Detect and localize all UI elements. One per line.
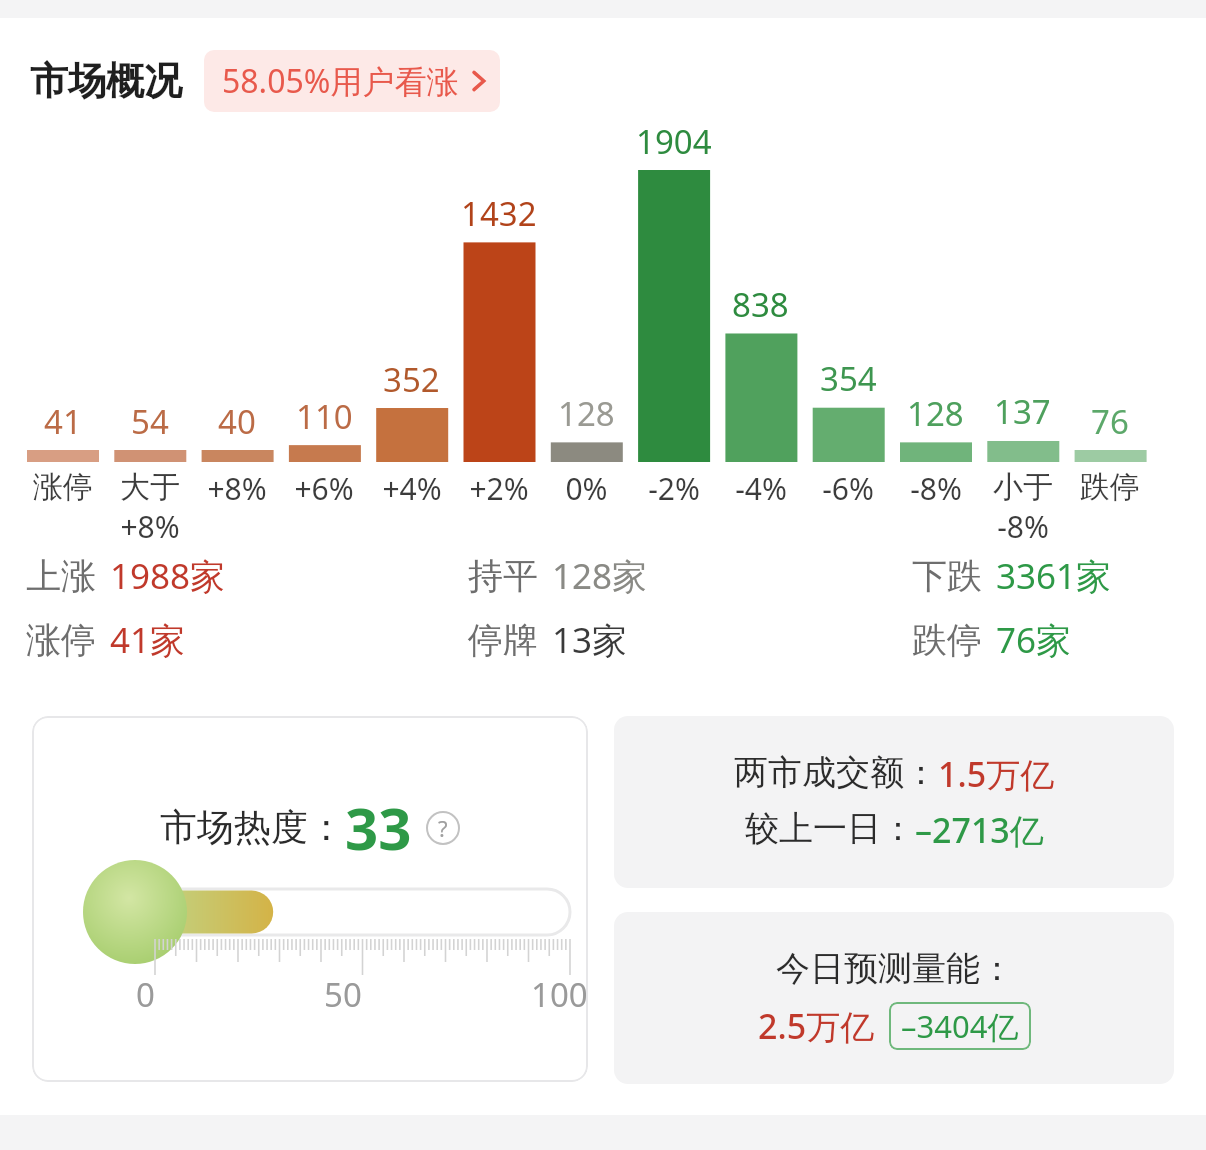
- staticText: 大于: [120, 468, 180, 506]
- staticText: 上涨: [26, 554, 96, 598]
- staticText: 41家: [110, 616, 186, 664]
- staticText: 76: [1091, 399, 1129, 444]
- staticText: 13家: [552, 616, 628, 664]
- staticText: 较上一日：: [745, 807, 915, 850]
- staticText: 0%: [565, 468, 608, 509]
- staticText: 跌停: [1080, 468, 1140, 506]
- staticText: 今日预测量能：: [776, 947, 1014, 990]
- staticText: 58.05%用户看涨: [222, 59, 459, 103]
- staticText: 128: [558, 391, 615, 436]
- staticText: 128: [907, 391, 964, 436]
- staticText: ?: [438, 813, 448, 843]
- staticText: +8%: [120, 506, 180, 540]
- staticText: 下跌: [912, 554, 982, 598]
- staticText: 76家: [996, 616, 1072, 664]
- staticText: +4%: [382, 468, 442, 509]
- staticText: 1432: [461, 191, 537, 236]
- staticText: 40: [218, 399, 256, 444]
- button[interactable]: 今日预测量能：: [614, 912, 1174, 1084]
- staticText: 1.5万亿: [938, 751, 1055, 797]
- staticText: 0: [136, 972, 155, 1017]
- staticText: 停牌: [468, 618, 538, 662]
- staticText: 352: [383, 357, 440, 402]
- staticText: 54: [131, 399, 169, 444]
- staticText: 2.5万亿: [758, 1003, 875, 1049]
- staticText: -8%: [997, 506, 1049, 540]
- staticText: 跌停: [912, 618, 982, 662]
- staticText: 33: [345, 788, 412, 867]
- button[interactable]: 市场热度：: [32, 716, 588, 1082]
- staticText: 持平: [468, 554, 538, 598]
- staticText: 市场概况: [30, 57, 182, 105]
- staticText: +8%: [207, 468, 267, 509]
- staticText: 1988家: [110, 552, 226, 600]
- staticText: +6%: [294, 468, 354, 509]
- staticText: 涨停: [26, 618, 96, 662]
- button[interactable]: 58.05%用户看涨: [204, 50, 500, 112]
- staticText: 小于: [993, 468, 1053, 506]
- staticText: -4%: [735, 468, 787, 509]
- staticText: -8%: [910, 468, 962, 509]
- staticText: 两市成交额：: [734, 751, 938, 794]
- staticText: 354: [820, 356, 877, 401]
- staticText: 3361家: [996, 552, 1112, 600]
- staticText: 128家: [552, 552, 648, 600]
- staticText: 1904: [636, 119, 712, 164]
- staticText: 41: [44, 399, 82, 444]
- staticText: –2713亿: [915, 807, 1044, 853]
- staticText: +2%: [469, 468, 529, 509]
- staticText: 涨停: [33, 468, 93, 506]
- staticText: 110: [296, 394, 353, 439]
- staticText: -2%: [648, 468, 700, 509]
- staticText: 50: [324, 972, 362, 1017]
- button[interactable]: 热度说明: [426, 811, 460, 845]
- staticText: 100: [531, 972, 588, 1017]
- button[interactable]: 两市成交额：: [614, 716, 1174, 888]
- staticText: –3404亿: [901, 1005, 1019, 1047]
- staticText: 市场热度：: [160, 804, 345, 851]
- staticText: 838: [732, 282, 789, 327]
- staticText: -6%: [822, 468, 874, 509]
- staticText: 137: [994, 389, 1051, 434]
